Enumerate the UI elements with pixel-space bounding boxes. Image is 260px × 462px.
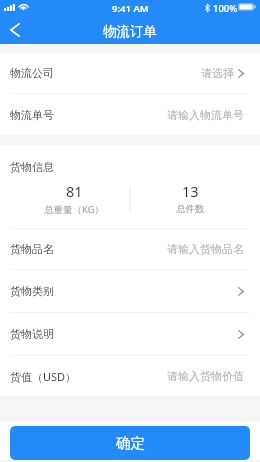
staticText: 货物信息: [10, 160, 54, 174]
staticText: 确定: [116, 434, 145, 452]
button[interactable]: 物流单号: [0, 94, 260, 135]
staticText: 9:41 AM: [112, 2, 149, 15]
staticText: 货物品名: [10, 242, 54, 256]
staticText: 请输入货物品名: [167, 242, 244, 256]
staticText: 货物说明: [10, 327, 54, 341]
staticText: 货值（USD）: [10, 369, 77, 384]
staticText: 总重量（KG）: [44, 203, 105, 216]
staticText: 物流单号: [10, 108, 54, 122]
button[interactable]: 物流公司: [0, 53, 260, 93]
staticText: 货物类别: [10, 284, 54, 298]
button[interactable]: 确定: [10, 426, 250, 460]
staticText: 100%: [213, 2, 238, 15]
staticText: 请输入物流单号: [167, 108, 244, 122]
staticText: 物流公司: [10, 66, 54, 80]
button[interactable]: 货值（USD）: [0, 356, 260, 396]
staticText: 物流订单: [103, 23, 157, 40]
button[interactable]: 货物品名: [0, 229, 260, 269]
button[interactable]: Back: [0, 19, 25, 44]
staticText: 总件数: [176, 203, 205, 215]
button[interactable]: 货物说明: [0, 313, 260, 355]
staticText: 请选择: [201, 66, 234, 80]
staticText: 请输入货物价值: [167, 369, 244, 383]
staticText: 13: [182, 181, 199, 201]
button[interactable]: 货物类别: [0, 270, 260, 312]
staticText: 81: [66, 181, 83, 201]
